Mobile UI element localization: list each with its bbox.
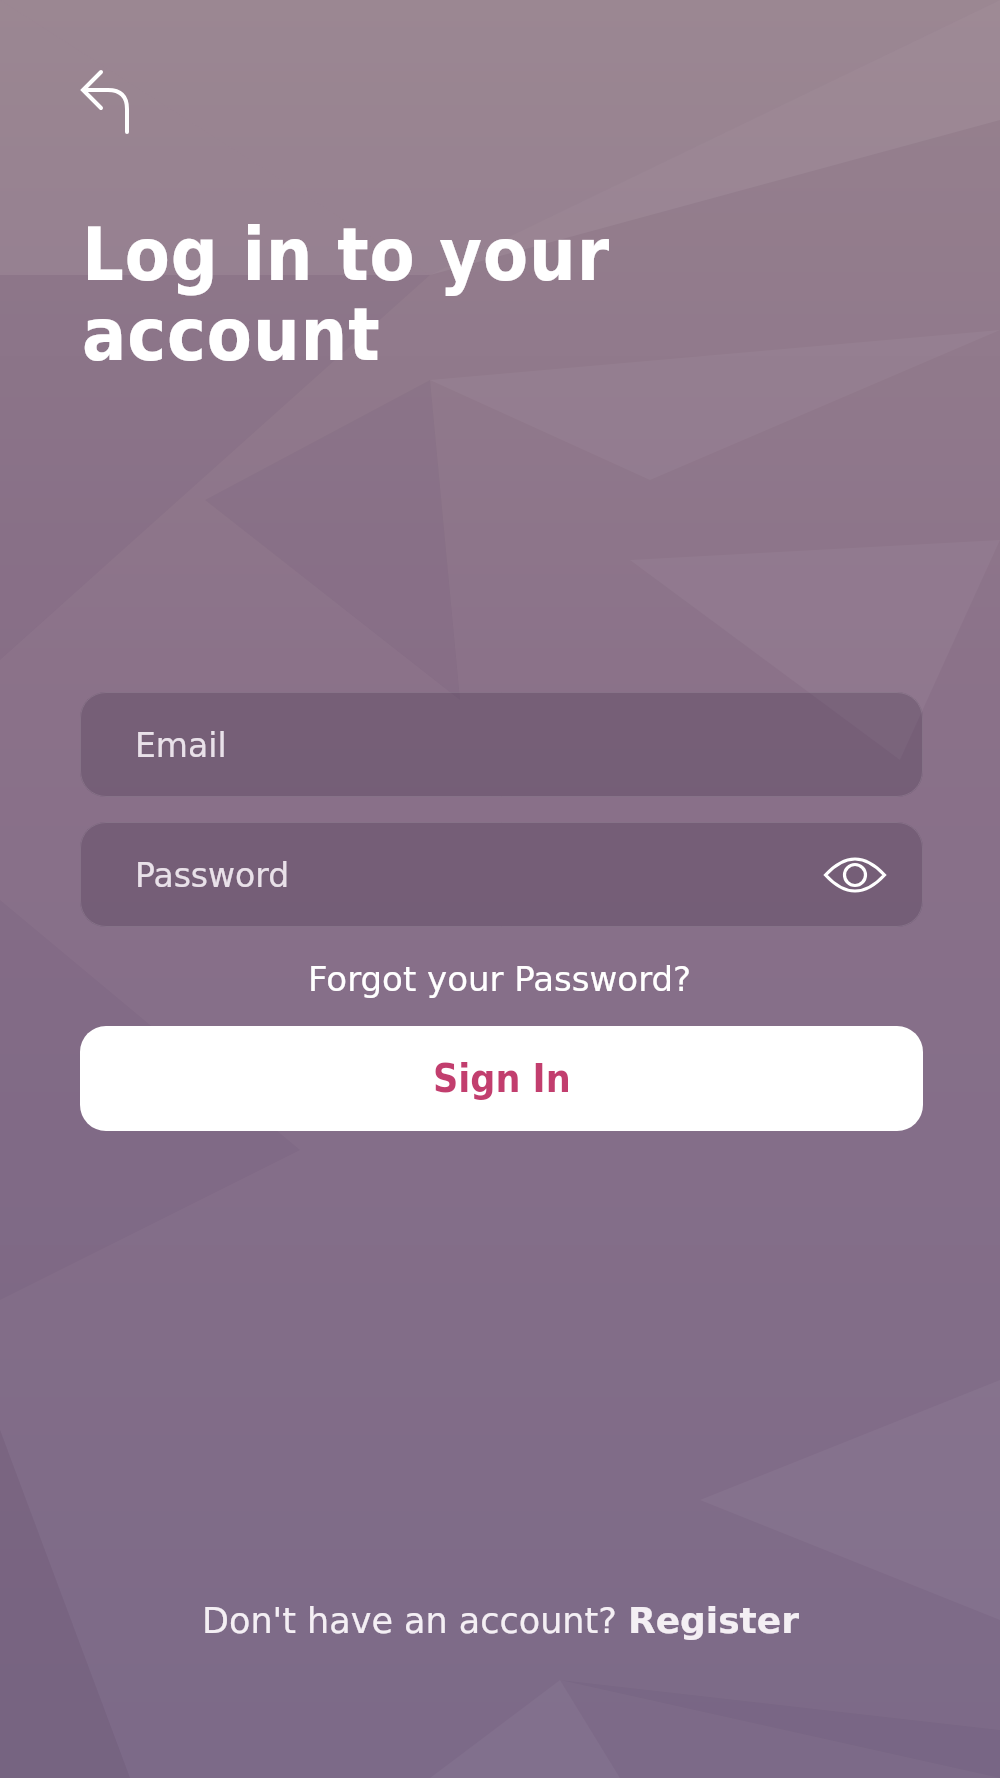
staticText: Sign In bbox=[433, 1056, 571, 1101]
button[interactable] bbox=[823, 843, 887, 907]
button[interactable]: Forgot your Password? bbox=[0, 950, 1000, 1008]
button[interactable]: Email bbox=[80, 692, 923, 797]
staticText: Don't have an account? Register bbox=[202, 1600, 799, 1642]
button[interactable] bbox=[64, 52, 148, 152]
staticText: Email bbox=[135, 726, 227, 764]
button[interactable]: Password bbox=[80, 822, 923, 927]
staticText: Password bbox=[135, 856, 290, 894]
staticText: Log in to your account bbox=[82, 212, 611, 377]
button[interactable]: Don't have an account? Register bbox=[0, 1581, 1000, 1661]
staticText: Forgot your Password? bbox=[308, 959, 692, 999]
button[interactable]: Sign In bbox=[80, 1026, 923, 1131]
